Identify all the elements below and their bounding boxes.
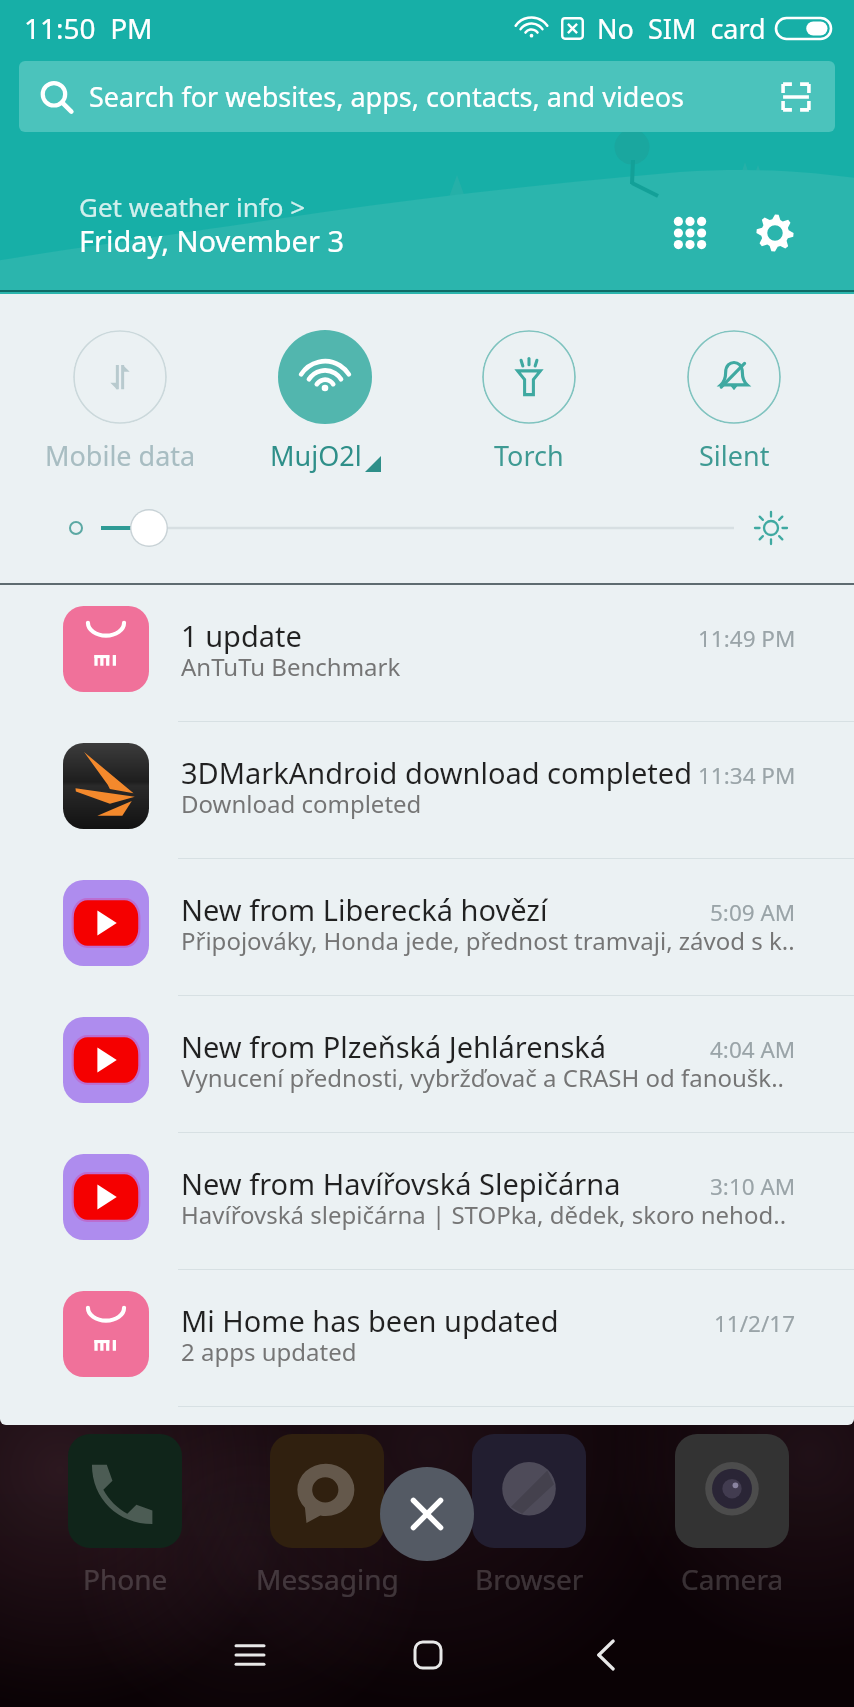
staticText: 4:04 AM	[710, 1034, 796, 1065]
button[interactable]: Torch	[444, 330, 614, 474]
staticText: New from Havířovská Slepičárna	[181, 1164, 621, 1203]
staticText: 3DMarkAndroid download completed	[181, 753, 692, 792]
button[interactable]: 3DMarkAndroid download completed	[0, 722, 854, 858]
staticText: 11/2/17	[714, 1308, 796, 1339]
button[interactable]: Settings	[744, 202, 806, 264]
button[interactable]: 1 update	[0, 585, 854, 721]
button[interactable]: New from Havířovská Slepičárna	[0, 1133, 854, 1269]
button[interactable]: Home	[386, 1615, 470, 1695]
staticText: Camera	[681, 1560, 784, 1598]
button[interactable]: Menu	[208, 1615, 292, 1695]
staticText: Připojováky, Honda jede, přednost tramva…	[181, 924, 795, 957]
staticText: Havířovská slepičárna | STOPka, dědek, s…	[181, 1198, 787, 1231]
button[interactable]: New from Plzeňská Jehlárenská	[0, 996, 854, 1132]
button[interactable]: Search for websites, apps, contacts, and…	[19, 61, 835, 132]
staticText: 11:50 PM	[24, 9, 153, 47]
button[interactable]: Silent	[649, 330, 819, 474]
button[interactable]: Messaging	[233, 1434, 421, 1598]
button[interactable]: Get weather info >	[79, 189, 306, 224]
button[interactable]: MujO2l	[240, 330, 410, 474]
staticText: 2 apps updated	[181, 1335, 357, 1368]
button[interactable]: Edit toggles	[659, 202, 721, 264]
staticText: MujO2l	[270, 437, 362, 474]
staticText: New from Liberecká hovězí	[181, 890, 548, 929]
staticText: Mobile data	[45, 437, 196, 474]
staticText: New from Plzeňská Jehlárenská	[181, 1027, 607, 1066]
button[interactable]: Phone	[31, 1434, 219, 1598]
staticText: Vynucení přednosti, vybržďovač a CRASH o…	[181, 1061, 785, 1094]
staticText: Friday, November 3	[79, 221, 345, 260]
staticText: Browser	[475, 1560, 584, 1598]
staticText: 11:34 PM	[698, 760, 796, 791]
staticText: Torch	[494, 437, 564, 474]
staticText: 11:49 PM	[698, 623, 796, 654]
button[interactable]: Browser	[435, 1434, 623, 1598]
other: Scan	[779, 80, 813, 114]
staticText: Download completed	[181, 787, 422, 820]
button[interactable]: Back	[564, 1615, 648, 1695]
staticText: 1 update	[181, 616, 302, 655]
button[interactable]: Mi Home has been updated	[0, 1270, 854, 1406]
staticText: Search for websites, apps, contacts, and…	[89, 78, 684, 115]
staticText: Phone	[83, 1560, 168, 1598]
staticText: Silent	[699, 437, 770, 474]
staticText: 3:10 AM	[710, 1171, 796, 1202]
button[interactable]: Camera	[638, 1434, 826, 1598]
button[interactable]: New from Liberecká hovězí	[0, 859, 854, 995]
staticText: Mi Home has been updated	[181, 1301, 559, 1340]
staticText: 5:09 AM	[710, 897, 796, 928]
button[interactable]: Close	[380, 1467, 474, 1561]
staticText: No SIM card	[597, 10, 766, 47]
button[interactable]: Mobile data	[35, 330, 205, 474]
staticText: Messaging	[256, 1560, 399, 1598]
staticText: AnTuTu Benchmark	[181, 650, 401, 683]
